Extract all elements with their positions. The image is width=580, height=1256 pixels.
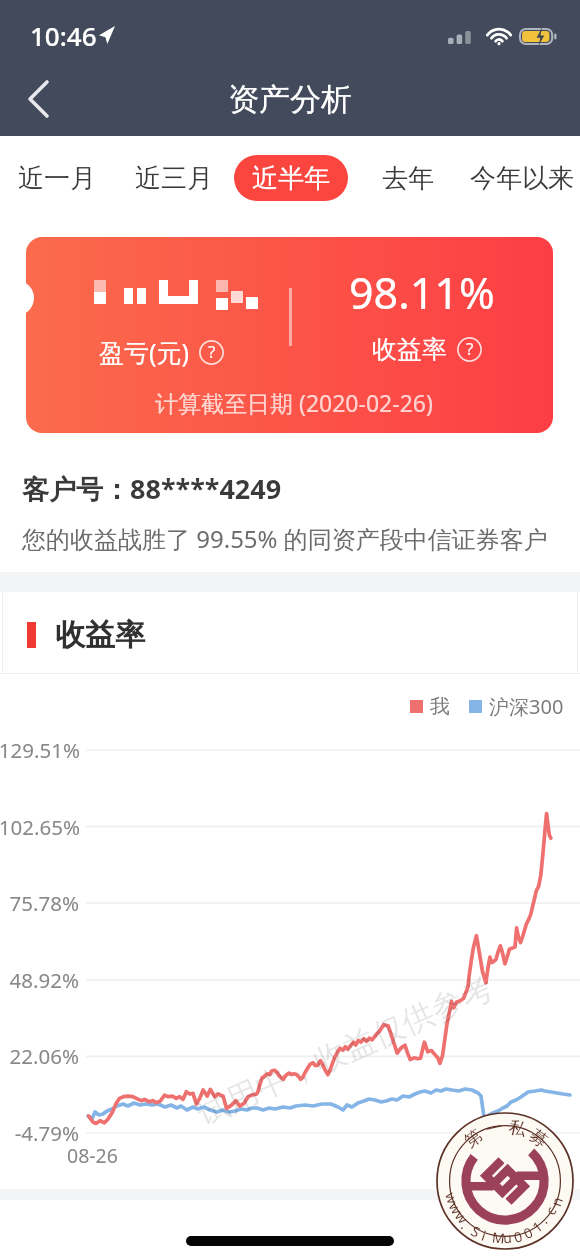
- staticText: 近半年: [252, 162, 330, 195]
- staticText: 收益率: [372, 334, 447, 365]
- staticText: i: [479, 1226, 489, 1245]
- staticText: 75.78%: [0, 889, 79, 917]
- staticText: 试用中，收益仅供参考: [191, 967, 499, 1134]
- staticText: 募: [525, 1125, 552, 1152]
- staticText: 1: [528, 1216, 547, 1237]
- staticText: 08-26: [67, 1142, 118, 1169]
- staticText: ?: [208, 340, 216, 363]
- staticText: 近一月: [18, 162, 96, 195]
- staticText: 计算截至日期 (2020-02-26): [155, 387, 433, 418]
- button[interactable]: 盈亏(元): [26, 237, 553, 433]
- staticText: n: [546, 1194, 567, 1209]
- staticText: 近三月: [135, 162, 213, 195]
- staticText: 沪深300: [489, 693, 564, 720]
- staticText: 48.92%: [0, 966, 79, 994]
- staticText: 去年: [382, 162, 434, 195]
- staticText: w: [441, 1190, 463, 1207]
- staticText: w: [451, 1207, 473, 1228]
- staticText: 102.65%: [0, 813, 79, 841]
- button[interactable]: 去年: [370, 155, 446, 201]
- staticText: 0: [512, 1226, 525, 1247]
- staticText: 02-26: [497, 1142, 548, 1169]
- button[interactable]: 近一月: [6, 155, 108, 201]
- button[interactable]: 近半年: [234, 155, 348, 201]
- staticText: 0: [520, 1222, 537, 1243]
- staticText: 您的收益战胜了 99.55% 的同资产段中信证券客户: [22, 522, 548, 555]
- staticText: S: [468, 1221, 484, 1242]
- staticText: w: [445, 1199, 467, 1218]
- staticText: 资产分析: [228, 80, 352, 119]
- staticText: -4.79%: [0, 1119, 79, 1147]
- staticText: 10:46: [30, 18, 97, 53]
- staticText: 我: [430, 694, 450, 719]
- staticText: .: [535, 1212, 551, 1227]
- button[interactable]: 今年以来: [458, 155, 580, 201]
- staticText: .: [457, 1216, 473, 1233]
- staticText: 一: [484, 1116, 505, 1140]
- staticText: 129.51%: [0, 736, 79, 764]
- staticText: u: [502, 1228, 513, 1247]
- button[interactable]: 近三月: [123, 155, 225, 201]
- staticText: 今年以来: [470, 162, 574, 195]
- staticText: 22.06%: [0, 1042, 79, 1070]
- staticText: ?: [466, 337, 474, 360]
- staticText: 收益率: [55, 616, 145, 654]
- staticText: 98.11%: [349, 263, 495, 322]
- button[interactable]: Back: [0, 64, 76, 134]
- staticText: c: [541, 1203, 560, 1218]
- staticText: M: [491, 1227, 506, 1248]
- staticText: 第: [460, 1125, 487, 1152]
- staticText: 客户号：88****4249: [22, 470, 282, 507]
- staticText: 私: [507, 1116, 528, 1140]
- staticText: 盈亏(元): [99, 335, 190, 369]
